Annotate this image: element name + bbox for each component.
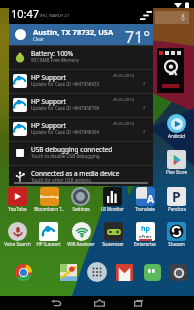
staticText: P <box>172 187 181 206</box>
button[interactable]: Connected as a media device <box>9 165 153 189</box>
staticText: 2 <box>143 81 146 86</box>
button[interactable]: HP Support <box>9 69 153 93</box>
button[interactable]: App <box>169 263 188 282</box>
button[interactable]: Settings <box>65 187 96 211</box>
button[interactable]: A <box>129 187 160 211</box>
staticText: 907.8MB Free Memory <box>31 57 79 63</box>
staticText: THU, MARCH 27 <box>39 13 69 18</box>
button[interactable]: Voice Search <box>2 222 33 246</box>
staticText: Touch to disable USB debugging. <box>31 153 101 159</box>
staticText: 26-03-2014 <box>113 73 134 78</box>
staticText: Bloomberg <box>40 194 59 199</box>
staticText: Voice Search <box>4 241 31 246</box>
staticText: 26-03-2014 <box>113 97 134 102</box>
staticText: Battery: 100% <box>31 49 74 58</box>
button[interactable]: Now playing widget <box>157 48 184 93</box>
button[interactable]: UI Monitor <box>97 187 128 211</box>
button[interactable]: hp <box>129 222 160 246</box>
staticText: Settings <box>72 206 90 211</box>
button[interactable]: Back <box>49 296 63 310</box>
staticText: 26-03-2014 <box>113 121 134 126</box>
button[interactable]: Android Video.. <box>161 114 192 138</box>
staticText: Wifi Analyzer <box>67 241 95 246</box>
staticText: Shazam <box>168 241 185 246</box>
staticText: HP Support <box>31 121 66 130</box>
button[interactable]: App <box>59 263 78 282</box>
button[interactable]: App <box>115 263 134 282</box>
button[interactable]: App <box>143 263 162 282</box>
staticText: USB debugging connected <box>31 145 113 154</box>
staticText: 2 <box>143 129 146 134</box>
button[interactable]: Google Search <box>155 11 189 24</box>
staticText: Touch for other USB options. <box>31 177 92 183</box>
staticText: 2 <box>143 105 146 110</box>
button[interactable]: Quick settings <box>140 11 152 20</box>
button[interactable]: USB debugging connected <box>9 141 153 165</box>
staticText: Update for Case ID :4647848564 <box>31 129 100 135</box>
staticText: 71° <box>125 26 151 47</box>
staticText: hp <box>141 224 150 234</box>
button[interactable]: Play Store <box>161 150 192 174</box>
button[interactable]: HP Support <box>9 117 153 141</box>
button[interactable]: App <box>14 263 33 282</box>
staticText: A <box>147 192 154 206</box>
staticText: Bloomberg T.. <box>34 206 64 211</box>
staticText: HP Support <box>31 73 66 82</box>
staticText: HP Support <box>36 241 61 246</box>
staticText: YouTube <box>8 206 27 211</box>
button[interactable]: YouTube <box>2 187 33 211</box>
staticText: ePrint <box>139 234 152 239</box>
button[interactable]: HP Support <box>9 93 153 117</box>
button[interactable]: All apps <box>87 262 107 282</box>
staticText: UI Monitor <box>101 206 124 211</box>
staticText: Update for Case ID :4647858799 <box>31 105 100 111</box>
staticText: Update for Case ID :4647958933 <box>31 81 100 87</box>
staticText: Pandora <box>168 206 186 211</box>
staticText: HP Support <box>31 97 66 106</box>
staticText: Superuser <box>102 241 124 246</box>
staticText: Austin, TX 78732, USA <box>33 27 114 37</box>
staticText: Clear <box>33 36 44 42</box>
button[interactable]: Recent apps <box>132 296 146 310</box>
staticText: Play Store <box>166 169 187 174</box>
button[interactable]: Shazam <box>161 222 192 246</box>
staticText: 10:47 <box>11 6 40 21</box>
button[interactable]: Battery: 100% <box>9 45 153 69</box>
button[interactable]: Bloomberg <box>33 187 64 211</box>
button[interactable]: P <box>161 187 192 211</box>
button[interactable]: Superuser <box>97 222 128 246</box>
staticText: Translate <box>135 206 155 211</box>
staticText: Android Video.. <box>161 133 192 138</box>
button[interactable]: HP Support <box>33 222 64 246</box>
button[interactable]: Austin, TX 78732, USA <box>9 24 153 45</box>
staticText: Connected as a media device <box>31 169 120 178</box>
button[interactable]: Wifi Analyzer <box>65 222 96 246</box>
staticText: Enterprise <box>134 241 156 246</box>
button[interactable]: Home <box>92 296 106 310</box>
